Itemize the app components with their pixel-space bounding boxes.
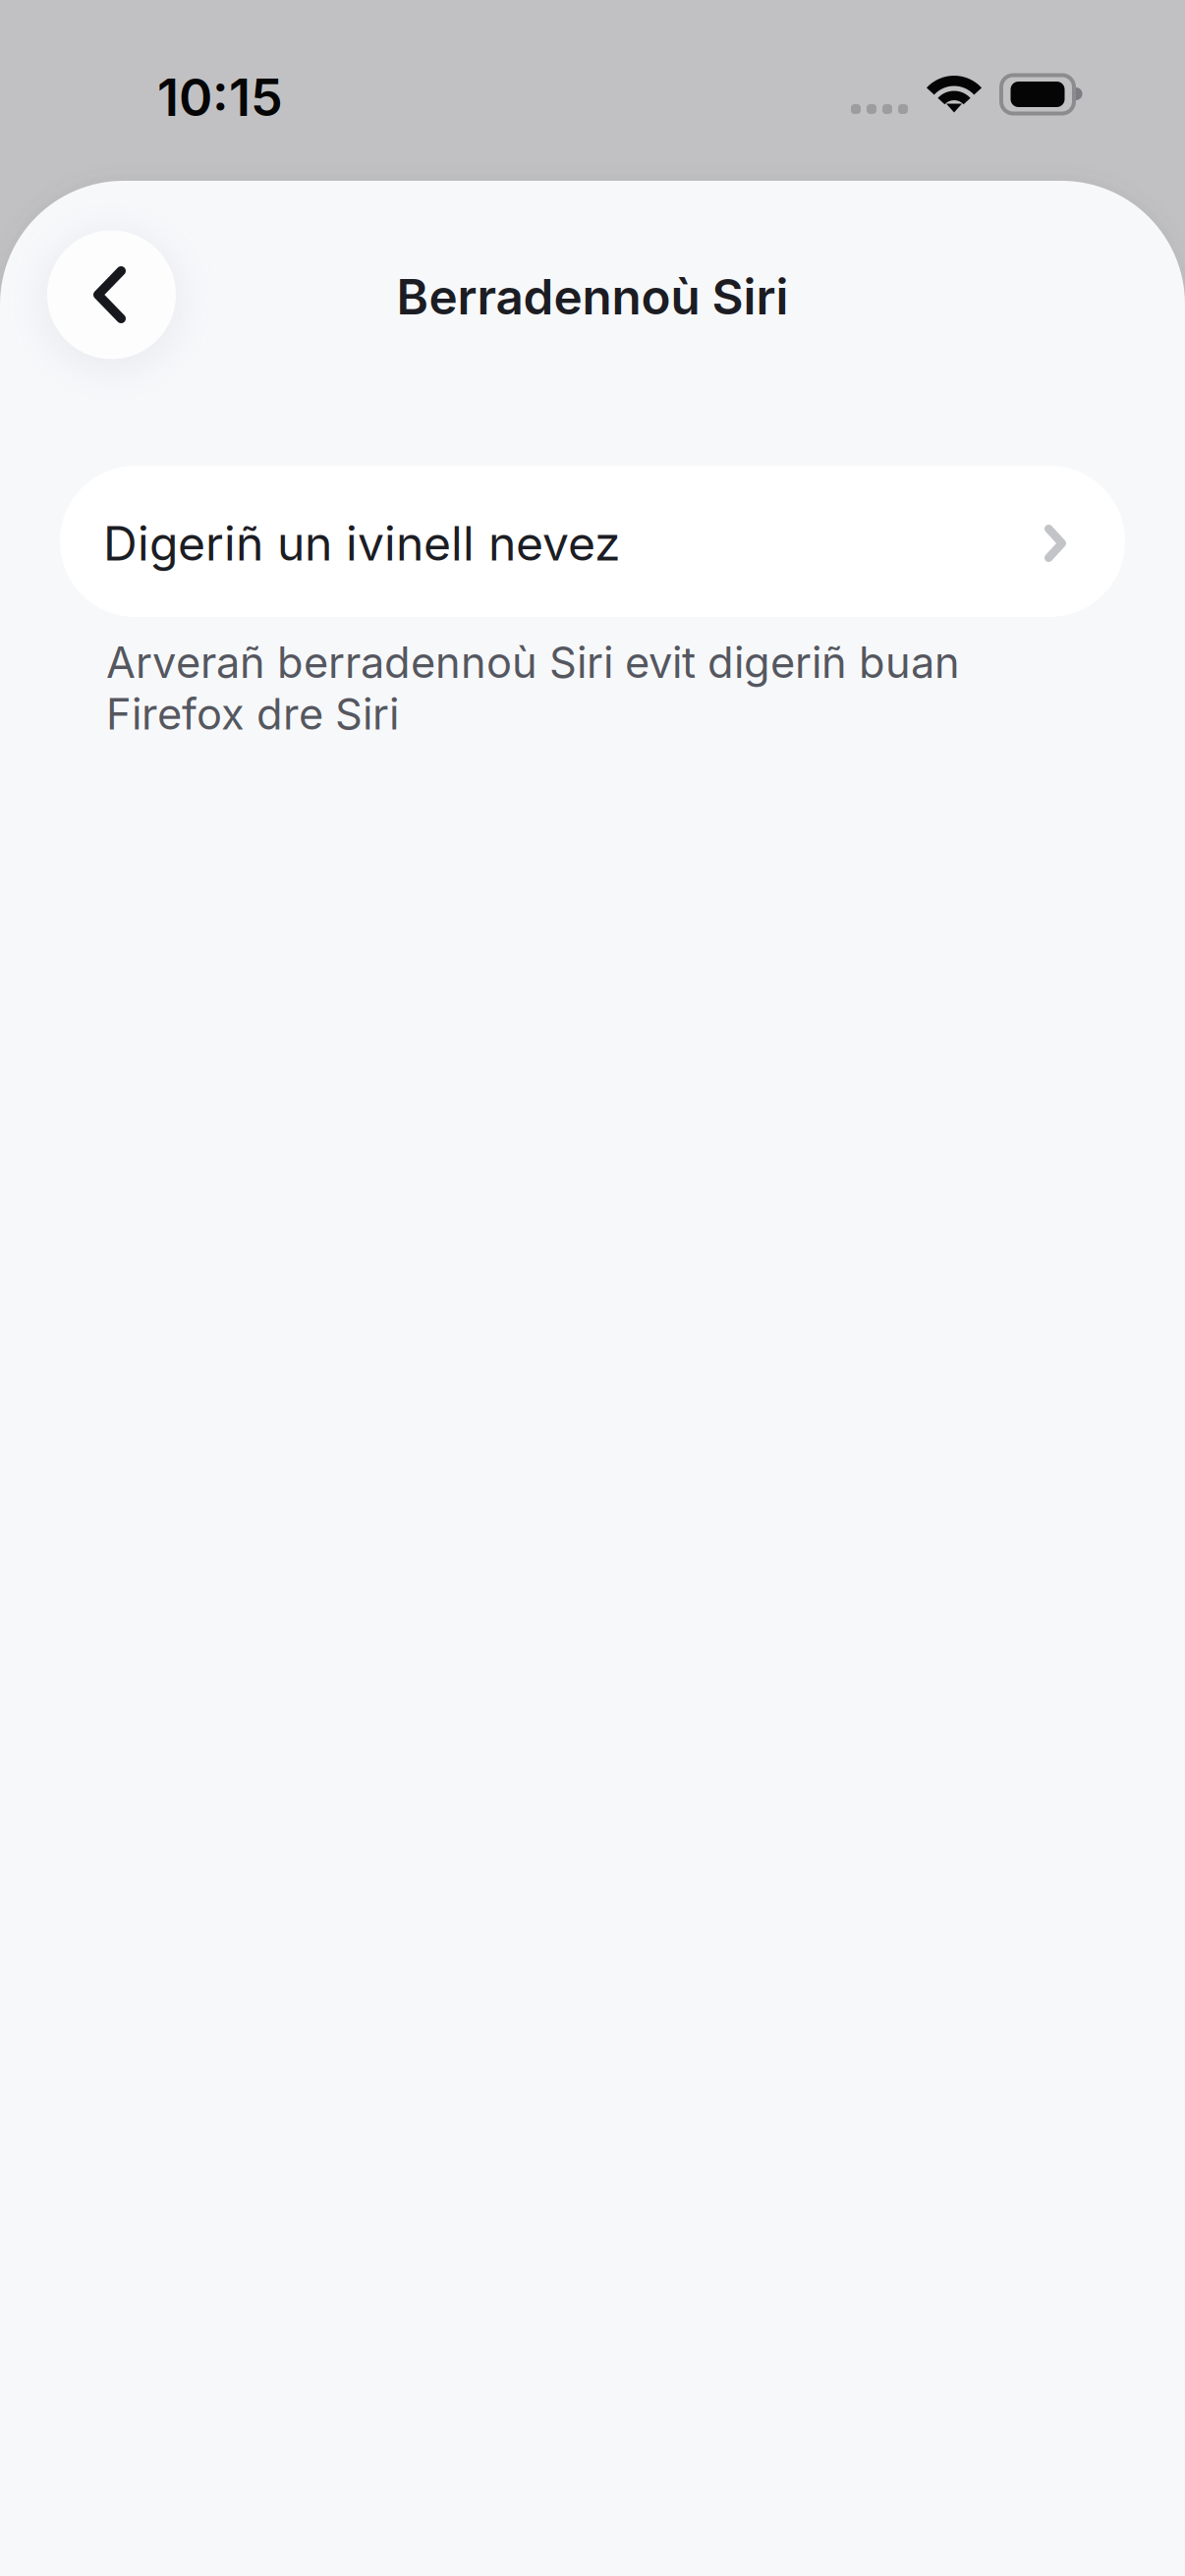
staticText: Arverañ berradennoù Siri evit digeriñ bu… [106, 637, 960, 740]
button[interactable]: Back [47, 230, 176, 359]
button[interactable]: Digeriñ un ivinell nevez [60, 466, 1125, 617]
staticText: 10:15 [157, 66, 283, 128]
staticText: Berradennoù Siri [396, 267, 789, 326]
staticText: Digeriñ un ivinell nevez [103, 515, 621, 572]
